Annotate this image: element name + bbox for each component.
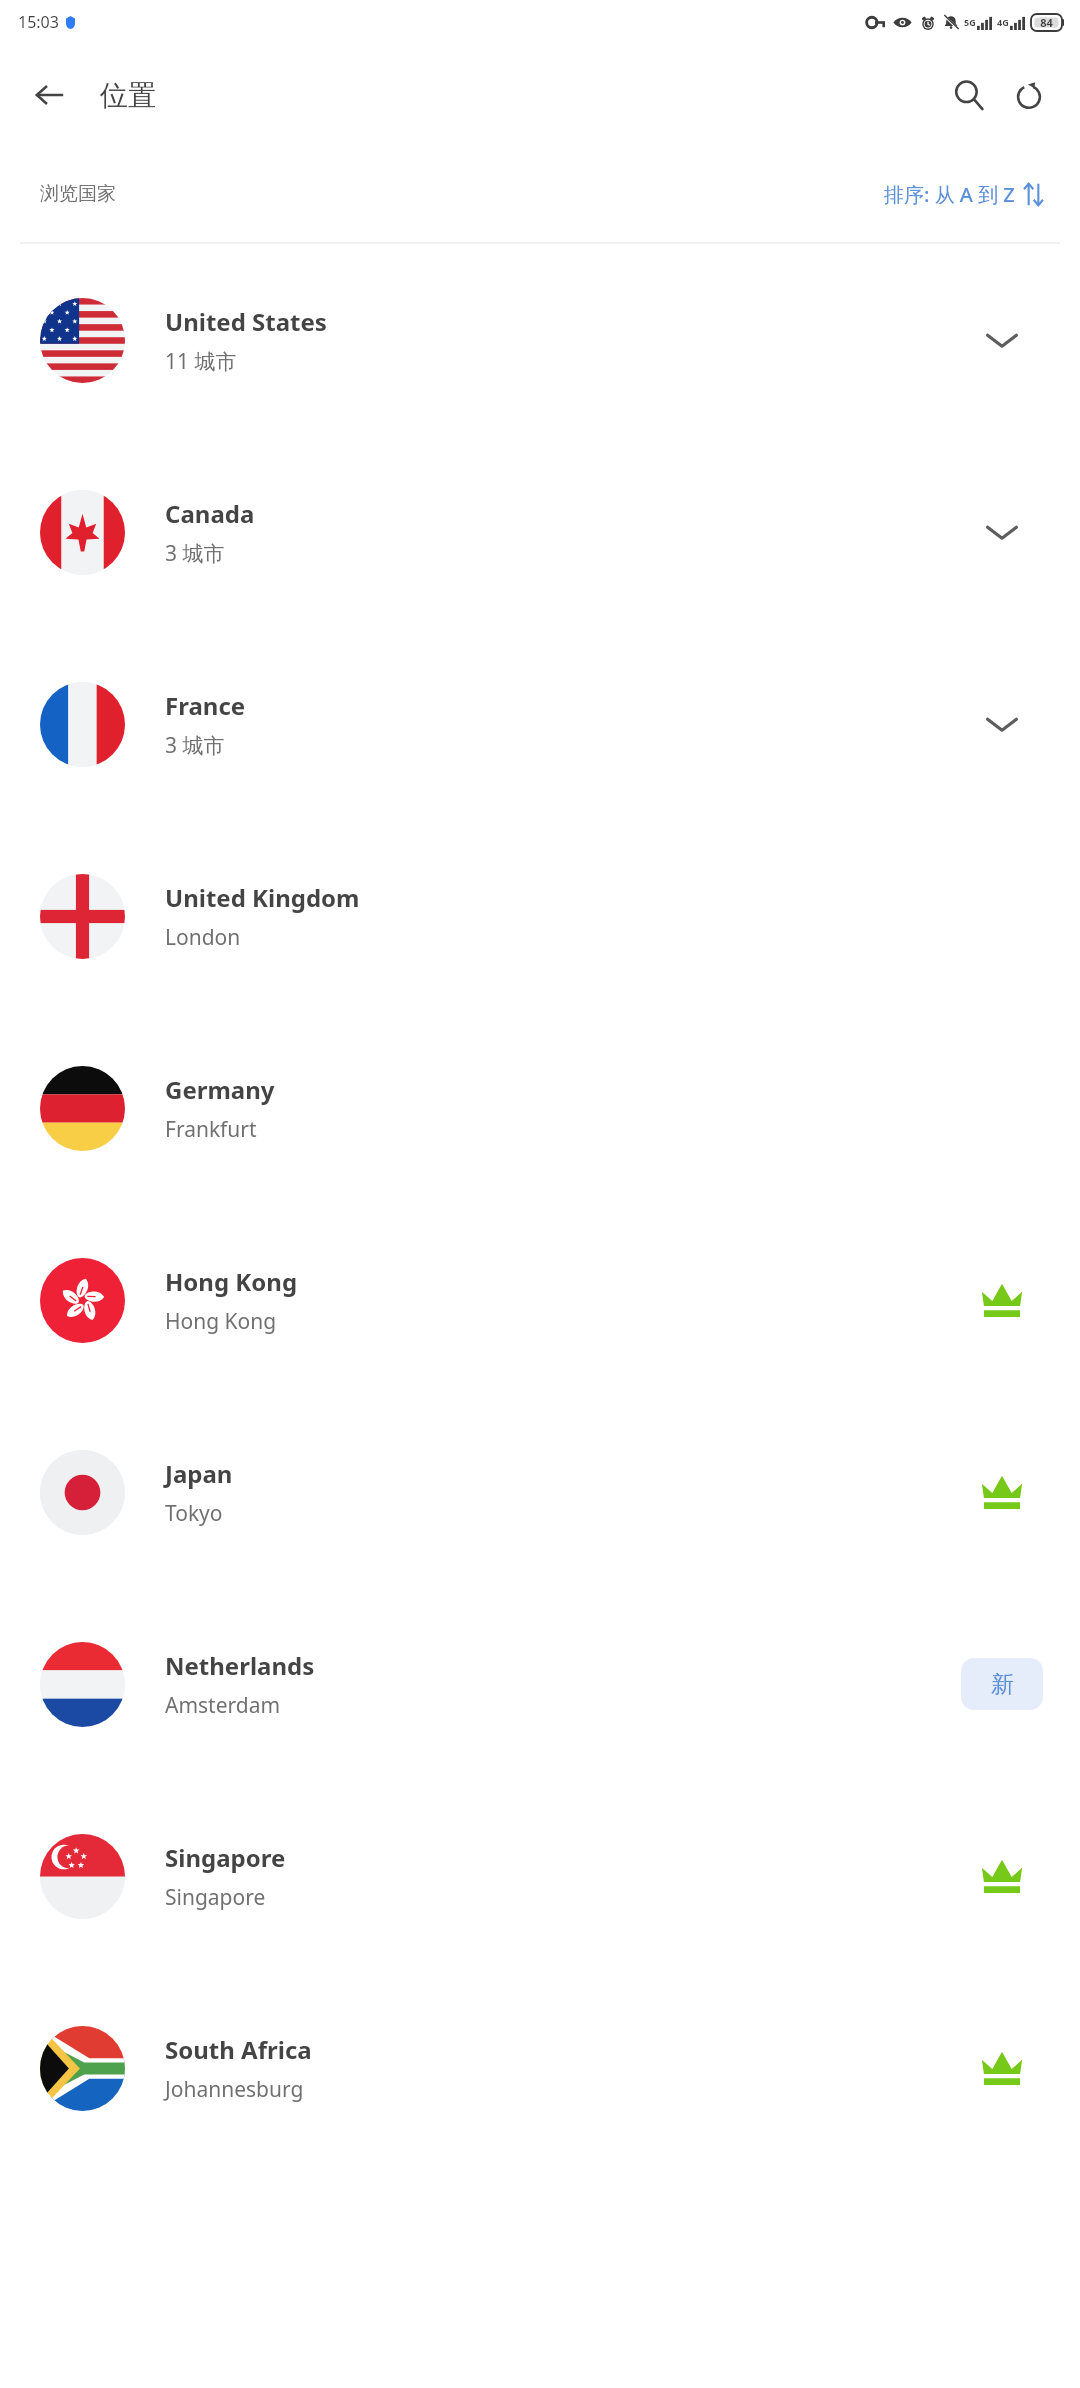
staticText: Amsterdam xyxy=(165,1691,281,1720)
staticText: France xyxy=(165,689,246,722)
staticText: 4G xyxy=(997,16,1009,28)
staticText: Netherlands xyxy=(165,1649,315,1682)
button[interactable]: France xyxy=(0,628,1080,820)
staticText: United States xyxy=(165,305,327,338)
button[interactable]: Premium xyxy=(964,1454,1040,1530)
staticText: 浏览国家 xyxy=(40,182,116,206)
staticText: London xyxy=(165,923,241,952)
button[interactable]: South Africa xyxy=(0,1972,1080,2164)
button[interactable]: Expand xyxy=(964,494,1040,570)
button[interactable]: Japan xyxy=(0,1396,1080,1588)
button[interactable]: Back xyxy=(22,67,78,123)
button[interactable]: Expand xyxy=(964,302,1040,378)
staticText: Singapore xyxy=(165,1883,266,1912)
staticText: Hong Kong xyxy=(165,1307,277,1336)
button[interactable]: Premium xyxy=(964,2030,1040,2106)
button[interactable]: United States xyxy=(0,244,1080,436)
staticText: 84 xyxy=(1040,15,1053,30)
staticText: Canada xyxy=(165,497,255,530)
button[interactable]: Singapore xyxy=(0,1780,1080,1972)
button[interactable]: Search xyxy=(940,66,998,124)
button[interactable]: United Kingdom xyxy=(0,820,1080,1012)
button[interactable]: 新 xyxy=(961,1658,1043,1710)
staticText: Singapore xyxy=(165,1841,286,1874)
staticText: Frankfurt xyxy=(165,1115,257,1144)
staticText: 新 xyxy=(991,1670,1014,1699)
staticText: Germany xyxy=(165,1073,275,1106)
staticText: 3 城市 xyxy=(165,539,225,568)
staticText: United Kingdom xyxy=(165,881,360,914)
staticText: 5G xyxy=(964,16,976,28)
staticText: Tokyo xyxy=(165,1499,223,1528)
staticText: Hong Kong xyxy=(165,1265,298,1298)
button[interactable]: Canada xyxy=(0,436,1080,628)
button[interactable]: Refresh xyxy=(1000,66,1058,124)
staticText: 位置 xyxy=(100,78,156,113)
staticText: 排序: 从 A 到 Z xyxy=(884,181,1015,208)
button[interactable]: Hong Kong xyxy=(0,1204,1080,1396)
button[interactable]: Expand xyxy=(964,686,1040,762)
button[interactable]: Premium xyxy=(964,1838,1040,1914)
staticText: Japan xyxy=(165,1457,233,1490)
staticText: 11 城市 xyxy=(165,347,237,376)
button[interactable]: Germany xyxy=(0,1012,1080,1204)
button[interactable]: Netherlands xyxy=(0,1588,1080,1780)
button[interactable]: 排序: 从 A 到 Z xyxy=(878,173,1050,216)
staticText: 3 城市 xyxy=(165,731,225,760)
staticText: 15:03 xyxy=(18,11,59,33)
staticText: South Africa xyxy=(165,2033,312,2066)
staticText: Johannesburg xyxy=(165,2075,304,2104)
button[interactable]: Premium xyxy=(964,1262,1040,1338)
